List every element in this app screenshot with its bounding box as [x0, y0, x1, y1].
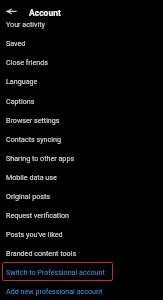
staticText: Close friends [6, 58, 48, 66]
button[interactable]: Request verification [0, 205, 163, 224]
staticText: Posts you've liked [6, 230, 63, 238]
staticText: Request verification [6, 211, 69, 219]
button[interactable]: Branded content tools [0, 243, 163, 262]
button[interactable]: Browser settings [0, 110, 163, 129]
staticText: Branded content tools [6, 249, 77, 257]
button[interactable]: Saved [0, 33, 163, 52]
staticText: Account [29, 8, 61, 18]
button[interactable]: Switch to Professional account [0, 262, 163, 281]
staticText: Mobile data use [6, 173, 57, 181]
staticText: Captions [6, 97, 35, 105]
staticText: Switch to Professional account [6, 268, 105, 276]
button[interactable]: Captions [0, 91, 163, 110]
staticText: Contacts syncing [6, 135, 61, 143]
staticText: Original posts [6, 192, 51, 200]
button[interactable]: Add new professional account [0, 281, 163, 300]
button[interactable]: Sharing to other apps [0, 148, 163, 167]
staticText: Your activity [6, 20, 45, 28]
button[interactable]: Posts you've liked [0, 224, 163, 243]
button[interactable]: Close friends [0, 52, 163, 71]
button[interactable]: Language [0, 71, 163, 90]
button[interactable]: Mobile data use [0, 167, 163, 186]
button[interactable]: Contacts syncing [0, 129, 163, 148]
staticText: Language [6, 77, 38, 85]
staticText: Add new professional account [6, 287, 103, 295]
button[interactable]: Your activity [0, 14, 163, 33]
button[interactable]: Back [3, 3, 19, 19]
staticText: Sharing to other apps [6, 154, 75, 162]
staticText: Browser settings [6, 116, 60, 124]
button[interactable]: Original posts [0, 186, 163, 205]
staticText: Saved [6, 39, 26, 47]
